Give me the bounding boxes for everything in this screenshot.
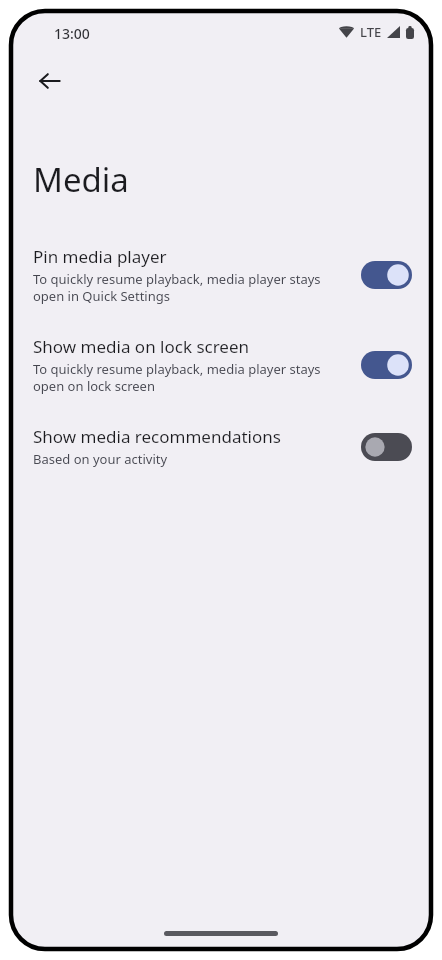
button[interactable]: Show media recommendations [11,425,431,468]
staticText: Pin media player [33,245,167,268]
staticText: LTE [360,23,382,41]
staticText: Show media recommendations [33,425,281,448]
staticText: Based on your activity [33,450,168,468]
button[interactable]: Back [28,59,72,103]
staticText: To quickly resume playback, media player… [33,360,346,395]
button[interactable]: Show media on lock screen [11,335,431,395]
staticText: 13:00 [54,24,90,43]
button[interactable]: On [360,259,412,291]
staticText: Show media on lock screen [33,335,250,358]
button[interactable]: Off [360,431,412,463]
staticText: Media [33,157,129,202]
button[interactable]: Pin media player [11,245,431,305]
button[interactable]: On [360,349,412,381]
staticText: To quickly resume playback, media player… [33,270,346,305]
